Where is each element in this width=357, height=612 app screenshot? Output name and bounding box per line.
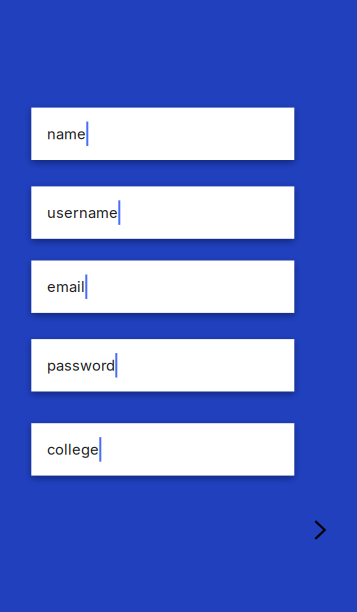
staticText: name bbox=[47, 125, 86, 143]
staticText: username bbox=[47, 204, 118, 221]
staticText: college bbox=[47, 440, 99, 458]
button[interactable]: username bbox=[31, 186, 294, 239]
button[interactable]: college bbox=[31, 423, 294, 476]
staticText: email bbox=[47, 278, 85, 295]
button[interactable]: password bbox=[31, 339, 294, 391]
button[interactable]: email bbox=[31, 260, 294, 313]
button[interactable]: Continue bbox=[304, 514, 336, 546]
button[interactable]: name bbox=[31, 108, 294, 160]
staticText: password bbox=[47, 356, 115, 374]
